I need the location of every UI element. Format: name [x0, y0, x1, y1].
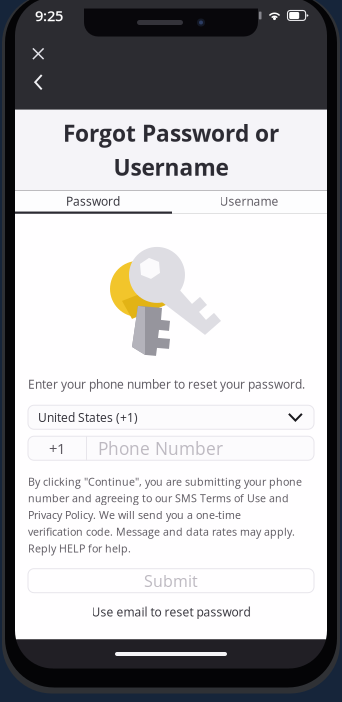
- staticText: Username: [113, 151, 228, 182]
- staticText: number and agreeing to our SMS Terms of …: [28, 491, 289, 505]
- staticText: +1: [49, 438, 65, 458]
- staticText: By clicking "Continue", you are submitti…: [28, 474, 302, 489]
- button[interactable]: Submit: [28, 569, 314, 593]
- staticText: Submit: [144, 570, 198, 592]
- staticText: verification code. Message and data rate…: [28, 524, 295, 539]
- button[interactable]: Password: [15, 190, 171, 211]
- button[interactable]: United States (+1): [28, 405, 314, 429]
- button[interactable]: Username: [171, 190, 327, 211]
- staticText: Use email to reset password: [91, 604, 250, 620]
- button[interactable]: Back: [15, 68, 57, 95]
- staticText: Forgot Password or: [63, 118, 279, 148]
- staticText: Privacy Policy. We will send you a one-t…: [28, 508, 241, 522]
- staticText: Enter your phone number to reset your pa…: [28, 376, 305, 392]
- staticText: United States (+1): [38, 409, 138, 425]
- staticText: 9:25: [35, 5, 63, 25]
- staticText: Reply HELP for help.: [28, 541, 131, 556]
- button[interactable]: Use email to reset password: [28, 593, 314, 626]
- staticText: Username: [219, 193, 278, 209]
- staticText: Phone Number: [98, 436, 223, 460]
- button[interactable]: Close: [15, 33, 58, 68]
- staticText: Password: [66, 193, 120, 209]
